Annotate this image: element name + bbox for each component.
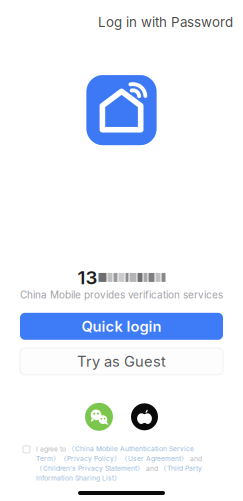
staticText: Term》《Privacy Policy》《User Agreement》 bbox=[36, 455, 188, 463]
button[interactable]: Try as Guest bbox=[20, 348, 223, 375]
button[interactable]: Log in with Password bbox=[95, 11, 236, 33]
button[interactable]: Sign in with WeChat bbox=[85, 403, 113, 431]
staticText: 《Third Party bbox=[160, 464, 202, 473]
staticText: Try as Guest bbox=[77, 352, 166, 370]
staticText: and bbox=[144, 464, 160, 473]
staticText: Information Sharing List》 bbox=[36, 474, 121, 482]
staticText: Quick login bbox=[81, 317, 161, 335]
staticText: China Mobile provides verification servi… bbox=[20, 289, 223, 301]
staticText: and bbox=[188, 455, 202, 463]
staticText: 13 bbox=[77, 266, 97, 289]
button[interactable]: Agree to the terms bbox=[23, 445, 30, 453]
staticText: 《China Mobile Authentication Service bbox=[68, 445, 194, 453]
button[interactable]: Quick login bbox=[20, 313, 223, 340]
staticText: 《Children's Privacy Statement》 bbox=[36, 464, 144, 473]
button[interactable]: Sign in with Apple bbox=[131, 403, 158, 430]
staticText: Log in with Password bbox=[98, 14, 233, 30]
staticText: I agree to bbox=[36, 445, 68, 453]
